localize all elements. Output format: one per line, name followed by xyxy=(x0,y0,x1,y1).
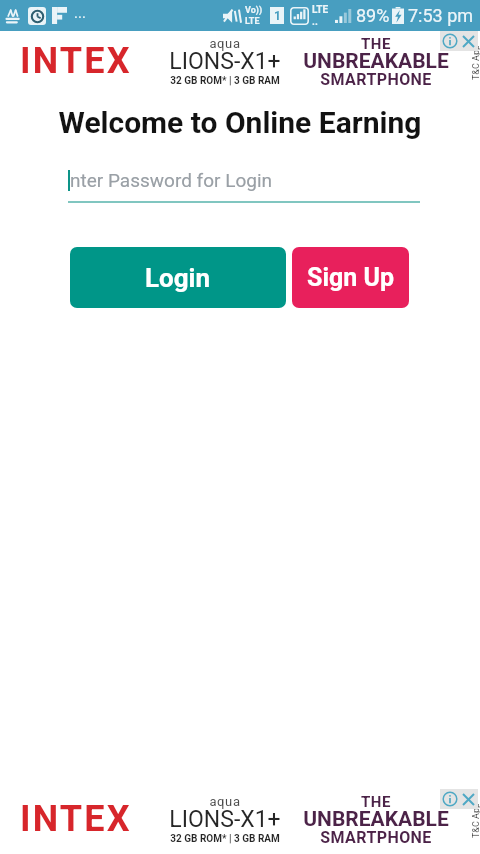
button[interactable]: Ad info xyxy=(440,789,459,809)
staticText: ... xyxy=(74,4,86,22)
staticText: nter Password for Login xyxy=(70,169,273,191)
staticText: INTEX xyxy=(20,40,132,82)
staticText: 89% xyxy=(356,5,390,26)
staticText: LIONS-X1+ xyxy=(125,806,325,833)
staticText: 1 xyxy=(274,9,281,23)
staticText: 7:53 pm xyxy=(408,5,474,26)
staticText: Vo)) xyxy=(245,5,263,16)
button[interactable]: Login xyxy=(70,247,286,308)
staticText: UNBREAKABLE xyxy=(276,49,476,74)
staticText: Welcome to Online Earning xyxy=(0,105,480,140)
button[interactable]: Close ad xyxy=(459,31,478,51)
staticText: LTE xyxy=(312,4,329,16)
staticText: aqua xyxy=(125,36,325,51)
staticText: SMARTPHONE xyxy=(276,70,476,89)
button[interactable]: Close ad xyxy=(459,789,478,809)
staticText: T&C App xyxy=(471,46,480,80)
staticText: THE xyxy=(276,793,476,811)
staticText: aqua xyxy=(125,794,325,809)
staticText: UNBREAKABLE xyxy=(276,807,476,832)
staticText: SMARTPHONE xyxy=(276,828,476,847)
staticText: LTE xyxy=(245,16,260,27)
staticText: Login xyxy=(145,263,211,293)
button[interactable]: Sign Up xyxy=(292,247,409,308)
staticText: Sign Up xyxy=(307,263,395,292)
staticText: INTEX xyxy=(20,798,132,840)
staticText: LIONS-X1+ xyxy=(125,48,325,75)
staticText: 32 GB ROM* | 3 GB RAM xyxy=(125,75,325,87)
staticText: THE xyxy=(276,35,476,53)
staticText: T&C App xyxy=(471,804,480,838)
button[interactable]: Ad info xyxy=(440,31,459,51)
staticText: 32 GB ROM* | 3 GB RAM xyxy=(125,833,325,845)
staticText: .. xyxy=(312,16,318,28)
